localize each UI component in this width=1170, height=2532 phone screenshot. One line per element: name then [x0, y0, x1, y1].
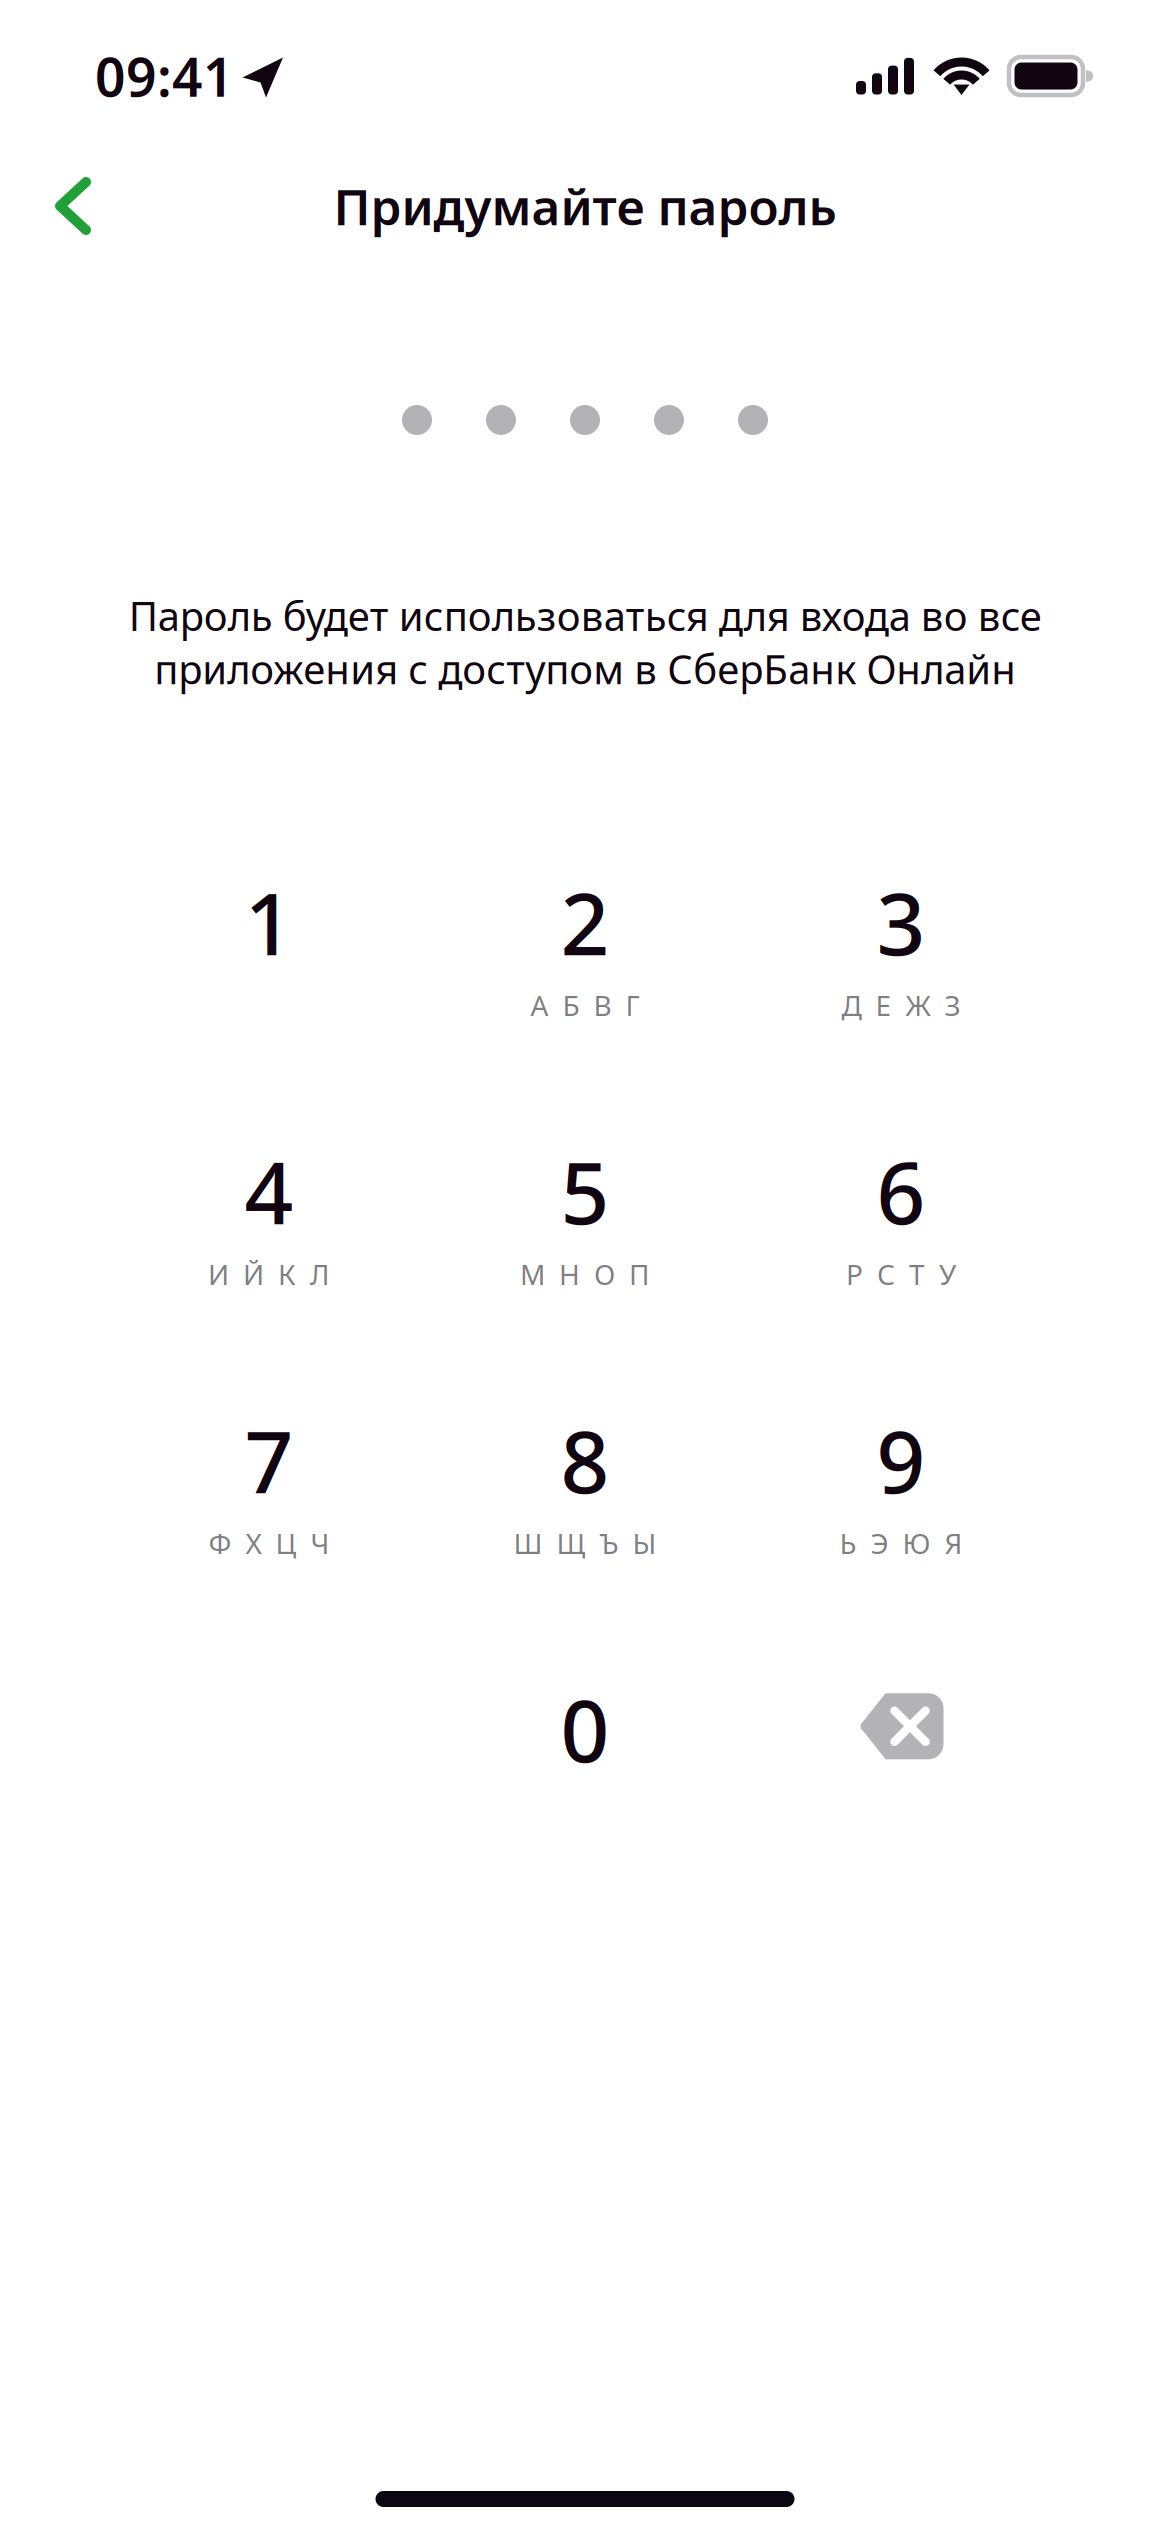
button[interactable]: 6: [743, 1140, 1059, 1295]
staticText: А Б В Г: [530, 987, 639, 1024]
button[interactable]: 1: [111, 871, 427, 1026]
staticText: Придумайте пароль: [333, 173, 836, 239]
staticText: 3: [876, 866, 925, 979]
staticText: Ф Х Ц Ч: [208, 1525, 329, 1562]
staticText: Ш Щ Ъ Ы: [513, 1525, 656, 1562]
button[interactable]: 8: [427, 1409, 743, 1564]
button[interactable]: 7: [111, 1409, 427, 1564]
staticText: 6: [876, 1135, 925, 1248]
staticText: 7: [244, 1404, 293, 1517]
staticText: 2: [560, 866, 609, 979]
staticText: Ь Э Ю Я: [839, 1525, 962, 1562]
staticText: 9: [876, 1404, 925, 1517]
staticText: 09:41: [95, 41, 234, 111]
button[interactable]: 0: [427, 1678, 743, 1833]
staticText: 5: [560, 1135, 609, 1248]
staticText: Пароль будет использоваться для входа во…: [128, 589, 1041, 695]
staticText: 1: [244, 866, 293, 979]
button[interactable]: 3: [743, 871, 1059, 1026]
button[interactable]: 4: [111, 1140, 427, 1295]
staticText: Д Е Ж З: [841, 987, 960, 1024]
staticText: И Й К Л: [208, 1256, 330, 1293]
staticText: М Н О П: [520, 1256, 650, 1293]
staticText: Р С Т У: [846, 1256, 956, 1293]
staticText: 0: [560, 1673, 609, 1786]
staticText: 8: [560, 1404, 609, 1517]
button[interactable]: 2: [427, 871, 743, 1026]
button[interactable]: Удалить: [743, 1678, 1059, 1833]
staticText: 4: [244, 1135, 293, 1248]
button[interactable]: Назад: [18, 171, 128, 241]
button[interactable]: 9: [743, 1409, 1059, 1564]
button[interactable]: 5: [427, 1140, 743, 1295]
